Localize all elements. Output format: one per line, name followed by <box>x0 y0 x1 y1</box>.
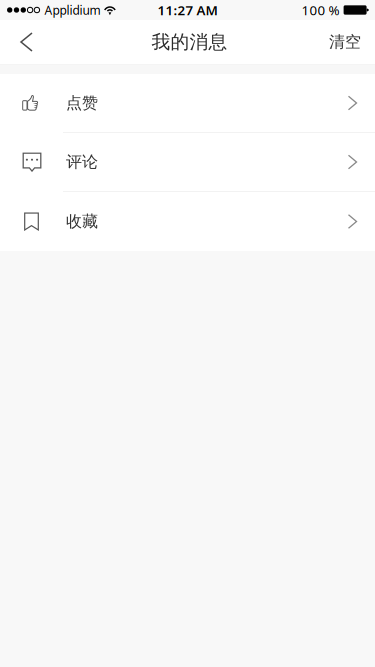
staticText: 清空 <box>329 32 361 52</box>
staticText: 点赞 <box>66 93 98 113</box>
staticText: 11:27 AM <box>157 1 217 19</box>
button[interactable]: Back <box>0 20 46 64</box>
staticText: 100 % <box>302 1 340 19</box>
button[interactable]: 清空 <box>313 20 375 64</box>
staticText: 我的消息 <box>151 30 227 53</box>
staticText: 评论 <box>66 152 98 172</box>
button[interactable]: 评论 <box>0 133 375 192</box>
staticText: 收藏 <box>66 212 98 231</box>
button[interactable]: 收藏 <box>0 192 375 251</box>
button[interactable]: 点赞 <box>0 74 375 133</box>
staticText: Applidium <box>45 2 101 18</box>
